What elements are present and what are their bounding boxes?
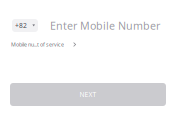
button[interactable]: Enter Mobile Number [38,19,166,32]
staticText: Mobile nu...t of service [11,41,64,48]
button[interactable]: Mobile nu...t of service [11,41,76,48]
staticText: Enter Mobile Number [50,18,160,33]
staticText: NEXT [79,90,96,99]
button[interactable]: NEXT [10,83,166,106]
staticText: +82 [15,21,27,30]
button[interactable]: +82 [12,19,38,32]
